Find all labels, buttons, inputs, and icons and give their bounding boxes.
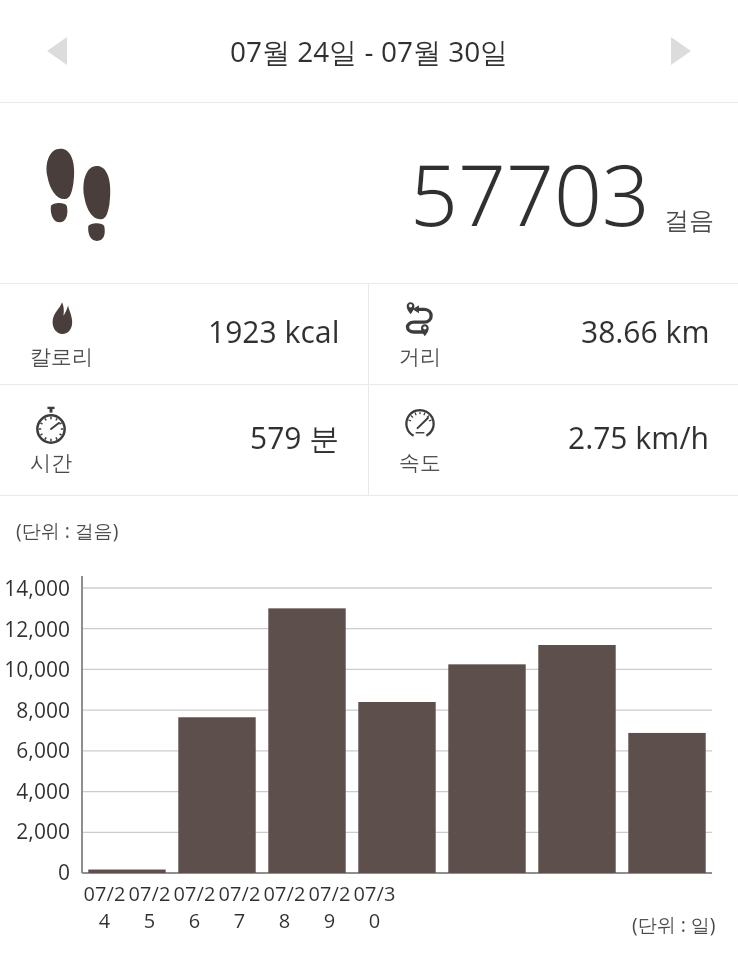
staticText: (단위 : 걸음) — [16, 518, 119, 544]
button[interactable]: Previous week — [26, 20, 88, 82]
staticText: 14,000 — [4, 574, 70, 603]
staticText: 칼로리 — [30, 344, 93, 370]
staticText: 07/25 — [127, 880, 172, 934]
staticText: 1923 kcal — [208, 311, 340, 352]
button[interactable]: 시간 — [0, 385, 368, 495]
staticText: 10,000 — [4, 655, 70, 684]
button[interactable]: 칼로리 — [0, 284, 368, 384]
button[interactable]: 57703 — [0, 103, 738, 283]
button[interactable]: Weekly steps bar chart — [0, 496, 738, 960]
staticText: 07/27 — [217, 880, 262, 934]
button[interactable]: Next week — [650, 20, 712, 82]
staticText: 57703 — [410, 136, 650, 250]
staticText: 38.66 km — [581, 311, 710, 352]
staticText: 07/30 — [352, 880, 397, 934]
staticText: 07/26 — [172, 880, 217, 934]
button[interactable]: 속도 — [369, 385, 738, 495]
staticText: 12,000 — [4, 615, 70, 644]
staticText: 07/24 — [82, 880, 127, 934]
staticText: 579 분 — [250, 417, 340, 458]
staticText: (단위 : 일) — [632, 912, 716, 938]
staticText: 07/29 — [307, 880, 352, 934]
button[interactable]: 거리 — [369, 284, 738, 384]
staticText: 4,000 — [16, 777, 70, 806]
staticText: 0 — [57, 858, 70, 887]
staticText: 시간 — [30, 450, 72, 476]
staticText: 걸음 — [664, 205, 714, 236]
staticText: 거리 — [399, 344, 441, 370]
staticText: 8,000 — [16, 696, 70, 725]
staticText: 07/28 — [262, 880, 307, 934]
staticText: 속도 — [399, 450, 441, 476]
staticText: 6,000 — [16, 736, 70, 765]
staticText: 2,000 — [16, 817, 70, 846]
staticText: 07월 24일 - 07월 30일 — [230, 32, 509, 70]
staticText: 2.75 km/h — [568, 417, 710, 458]
